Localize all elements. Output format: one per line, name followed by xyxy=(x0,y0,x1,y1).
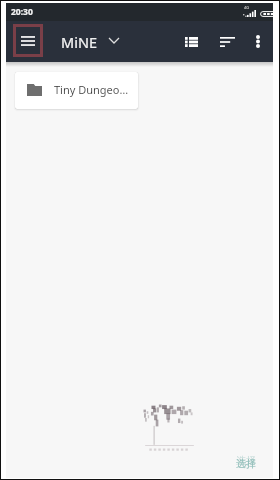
button[interactable]: 选择 xyxy=(236,457,256,470)
staticText: Tiny Dungeo… xyxy=(54,82,129,97)
button[interactable]: MiNE xyxy=(57,21,123,62)
staticText: 选择 xyxy=(236,457,256,470)
staticText: 4G xyxy=(244,5,250,10)
button[interactable]: Open navigation drawer xyxy=(13,24,43,57)
button[interactable]: Tiny Dungeo… xyxy=(15,72,138,109)
button[interactable]: Sort xyxy=(208,21,242,62)
staticText: MiNE xyxy=(61,32,97,52)
staticText: 选择 xyxy=(236,454,256,467)
staticText: 20:30 xyxy=(11,6,33,18)
button[interactable]: More options xyxy=(242,21,273,62)
button[interactable]: View mode xyxy=(174,21,208,62)
